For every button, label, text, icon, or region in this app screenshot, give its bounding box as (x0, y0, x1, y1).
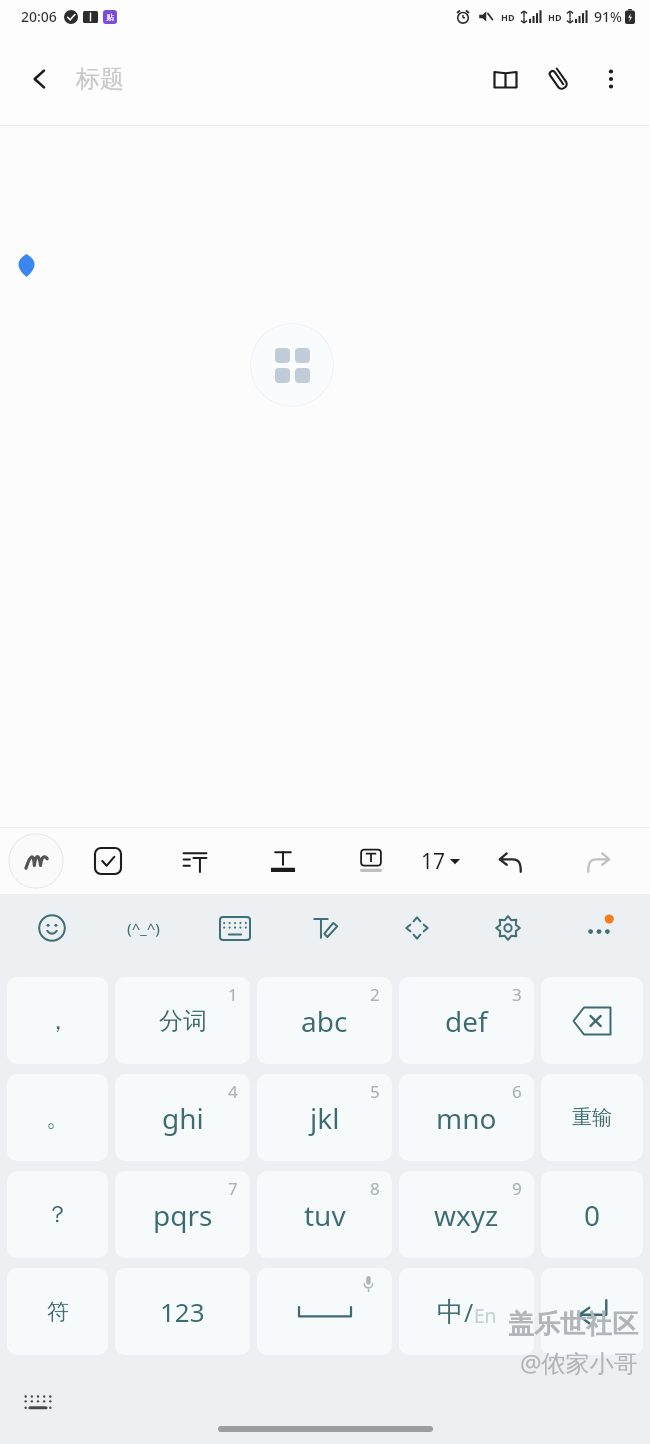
button[interactable]: Back (14, 53, 66, 105)
staticText: 标题 (76, 64, 124, 94)
button[interactable]: Apps (250, 323, 334, 407)
staticText: 中 (437, 1295, 464, 1329)
button[interactable]: Move cursor (371, 900, 462, 956)
staticText: ghi (162, 1099, 204, 1137)
button[interactable]: Emoji (6, 900, 98, 956)
button[interactable] (257, 1268, 392, 1355)
staticText: @侬家小哥 (520, 1346, 638, 1379)
button[interactable]: jkl (257, 1074, 392, 1161)
button[interactable]: More options (586, 54, 636, 104)
staticText: / (464, 1295, 474, 1329)
staticText: wxyz (434, 1196, 499, 1234)
button[interactable]: Reading mode (478, 52, 532, 106)
staticText: 0 (584, 1196, 601, 1234)
staticText: 符 (47, 1298, 69, 1326)
button[interactable]: Hide keyboard (18, 1382, 58, 1422)
staticText: En (474, 1303, 497, 1329)
button[interactable]: Undo (466, 833, 554, 889)
button[interactable]: Settings (462, 900, 553, 956)
button[interactable]: Checklist (64, 833, 151, 889)
staticText: 5 (370, 1080, 380, 1103)
staticText: tuv (304, 1196, 346, 1234)
staticText: 盖乐世社区 (508, 1308, 638, 1341)
button[interactable] (541, 977, 643, 1064)
staticText: 。 (46, 1103, 70, 1133)
button[interactable]: Attach (532, 52, 586, 106)
staticText: 贴 (106, 12, 114, 22)
button[interactable]: 0 (541, 1171, 643, 1258)
staticText: 123 (160, 1294, 205, 1329)
staticText: 8 (370, 1177, 380, 1200)
button[interactable]: Handwriting (8, 833, 64, 889)
button[interactable]: wxyz (399, 1171, 534, 1258)
staticText: jkl (310, 1099, 340, 1137)
staticText: (^_^) (127, 918, 161, 938)
button[interactable]: ， (7, 977, 108, 1064)
button[interactable]: def (399, 977, 534, 1064)
button[interactable]: tuv (257, 1171, 392, 1258)
button[interactable]: Keyboard layout (189, 900, 280, 956)
staticText: 4 (228, 1080, 238, 1103)
button[interactable]: 中 (399, 1268, 534, 1355)
staticText: 9 (512, 1177, 522, 1200)
button[interactable]: 分词 (115, 977, 250, 1064)
staticText: ？ (46, 1200, 69, 1229)
button[interactable]: Redo (554, 833, 642, 889)
button[interactable]: abc (257, 977, 392, 1064)
button[interactable]: 重输 (541, 1074, 643, 1161)
button[interactable]: Text highlight (327, 833, 415, 889)
button[interactable]: Handwriting input (280, 900, 371, 956)
button[interactable]: Paragraph style (151, 833, 239, 889)
staticText: mno (436, 1099, 497, 1137)
button[interactable]: 123 (115, 1268, 250, 1355)
staticText: pqrs (153, 1196, 213, 1234)
staticText: def (445, 1002, 488, 1040)
staticText: 6 (512, 1080, 522, 1103)
staticText: HD (501, 11, 515, 23)
staticText: 重输 (572, 1105, 612, 1130)
button[interactable]: mno (399, 1074, 534, 1161)
button[interactable]: 17 (415, 833, 466, 889)
staticText: ， (46, 1006, 70, 1036)
button[interactable]: ？ (7, 1171, 108, 1258)
button[interactable]: ghi (115, 1074, 250, 1161)
staticText: 91% (594, 7, 622, 26)
button[interactable]: More (553, 900, 644, 956)
staticText: 1 (228, 983, 238, 1006)
staticText: 7 (228, 1177, 238, 1200)
button[interactable]: Kaomoji (98, 900, 189, 956)
staticText: 20:06 (21, 7, 57, 26)
button[interactable]: 。 (7, 1074, 108, 1161)
staticText: HD (548, 11, 562, 23)
staticText: 2 (370, 983, 380, 1006)
staticText: 17 (421, 847, 446, 876)
button[interactable] (541, 1268, 643, 1355)
button[interactable]: Text color (239, 833, 327, 889)
button[interactable]: pqrs (115, 1171, 250, 1258)
button[interactable]: 符 (7, 1268, 108, 1355)
staticText: 分词 (159, 1006, 207, 1036)
staticText: 3 (512, 983, 522, 1006)
staticText: abc (301, 1002, 348, 1040)
